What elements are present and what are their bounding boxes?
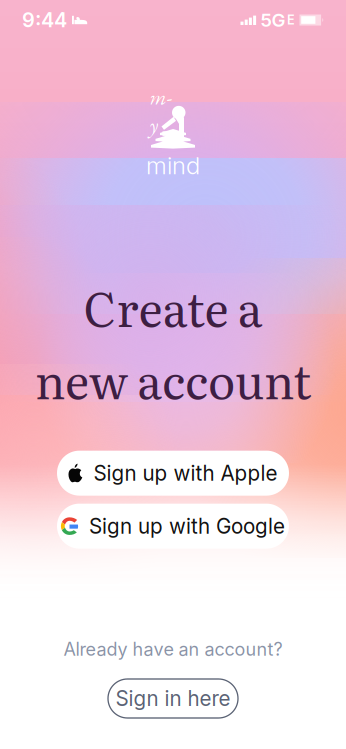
staticText: Sign up with Apple	[93, 461, 277, 486]
staticText: Sign up with Google	[89, 514, 285, 539]
staticText: 9:44	[22, 8, 67, 32]
staticText: Already have an account?	[63, 638, 282, 660]
staticText: my	[149, 83, 172, 139]
staticText: Sign in here	[115, 686, 230, 711]
staticText: E	[287, 12, 295, 28]
staticText: new account	[35, 344, 311, 414]
button[interactable]: Sign up with Apple	[57, 451, 289, 496]
staticText: Create a	[83, 272, 262, 341]
staticText: 5G	[260, 9, 285, 31]
staticText: mind	[146, 151, 200, 180]
button[interactable]: Sign up with Google	[57, 504, 289, 549]
button[interactable]: Sign in here	[108, 679, 238, 718]
